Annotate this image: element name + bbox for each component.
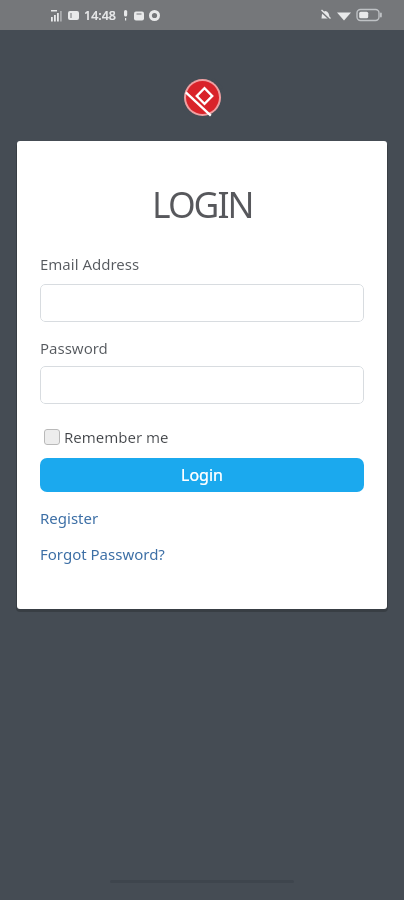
button[interactable] (40, 284, 364, 322)
staticText: Email Address (40, 254, 140, 274)
button[interactable]: Remember me (44, 427, 169, 447)
button[interactable]: Login (40, 458, 364, 492)
staticText: Password (40, 338, 108, 358)
staticText: LOGIN (152, 180, 253, 228)
staticText: Forgot Password? (40, 544, 165, 564)
staticText: Register (40, 508, 99, 528)
button[interactable] (40, 366, 364, 404)
button[interactable]: Register (40, 508, 99, 528)
staticText: Login (181, 464, 223, 486)
staticText: 14:48 (84, 7, 117, 24)
staticText: Remember me (64, 427, 169, 447)
button[interactable]: Forgot Password? (40, 544, 165, 564)
